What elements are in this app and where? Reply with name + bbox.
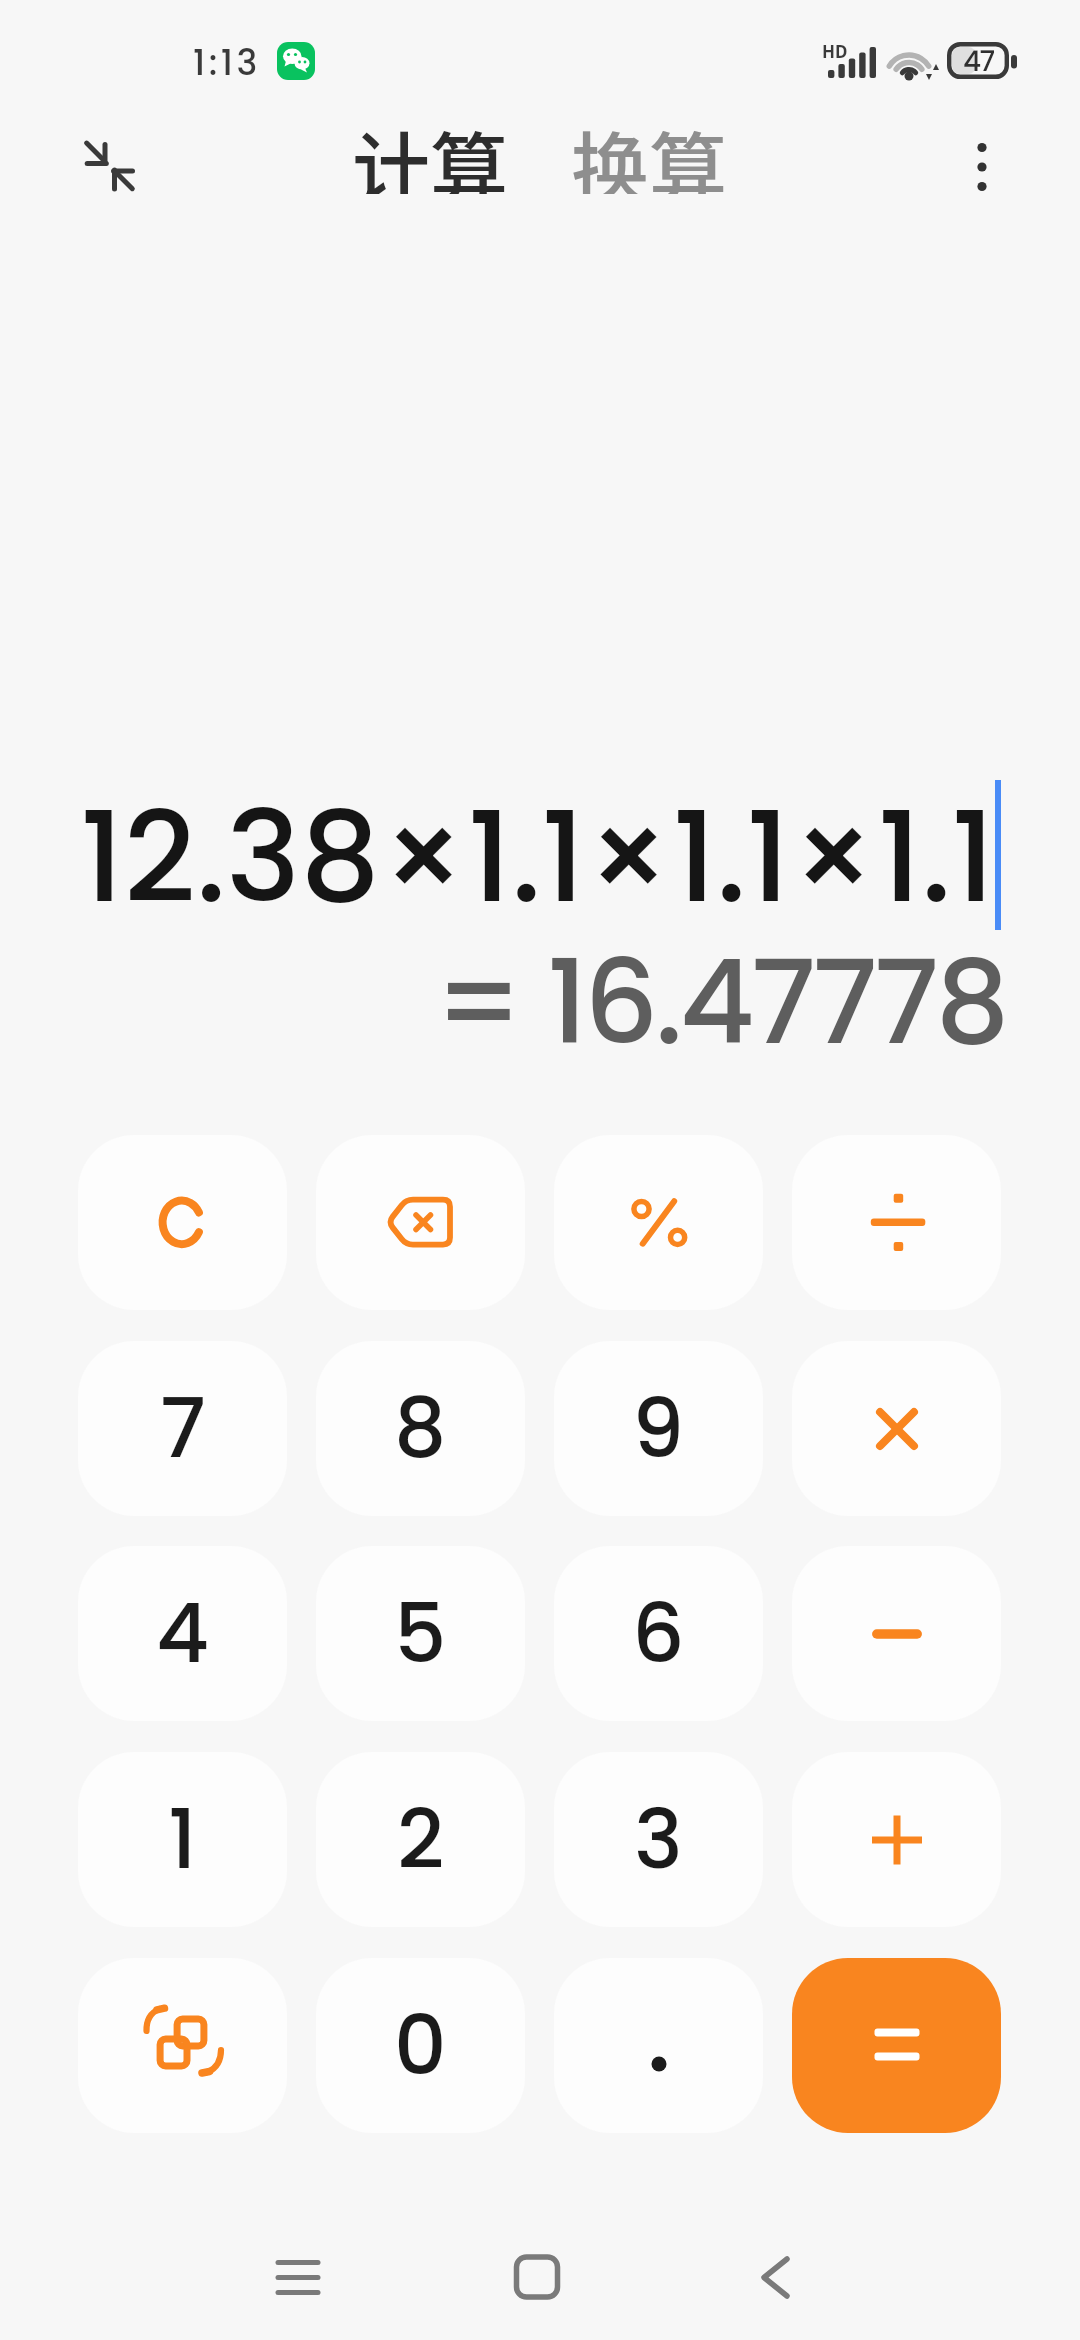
button[interactable] [266,2245,330,2309]
staticText: 12.38×1.1×1.1×1.1 [80,770,995,940]
button[interactable] [792,1958,1001,2133]
button[interactable] [505,2245,569,2309]
staticText: 换算 [571,108,728,194]
button[interactable]: 计算 [352,108,509,194]
button[interactable]: 0 [316,1958,525,2133]
staticText: 5 [394,1576,447,1691]
button[interactable]: 7 [78,1341,287,1516]
button[interactable]: 6 [554,1546,763,1721]
button[interactable]: 2 [316,1752,525,1927]
button[interactable]: 9 [554,1341,763,1516]
button[interactable] [792,1546,1001,1721]
button[interactable] [554,1958,763,2133]
button[interactable]: 1 [78,1752,287,1927]
button[interactable]: 5 [316,1546,525,1721]
staticText: 2 [397,1782,445,1897]
button[interactable] [952,137,1012,197]
staticText: 3 [634,1782,683,1897]
button[interactable] [744,2245,808,2309]
staticText: HD [822,40,848,63]
staticText: 47 [963,42,994,79]
button[interactable]: 3 [554,1752,763,1927]
button[interactable]: 换算 [571,108,728,194]
staticText: 9 [632,1371,685,1486]
staticText: 1 [168,1782,197,1897]
staticText: 7 [160,1371,206,1486]
button[interactable] [554,1135,763,1310]
button[interactable] [74,131,146,203]
staticText: = 16.47778 [434,921,1006,1051]
staticText: 计算 [352,108,509,194]
staticText: 4 [156,1576,210,1691]
button[interactable] [78,1958,287,2133]
staticText: 6 [632,1576,685,1691]
staticText: 8 [394,1371,447,1486]
button[interactable] [78,1135,287,1310]
button[interactable] [792,1135,1001,1310]
button[interactable]: 8 [316,1341,525,1516]
staticText: 0 [394,1988,447,2103]
button[interactable] [792,1752,1001,1927]
button[interactable] [792,1341,1001,1516]
staticText: 1:13 [193,38,261,87]
button[interactable]: 4 [78,1546,287,1721]
button[interactable] [316,1135,525,1310]
